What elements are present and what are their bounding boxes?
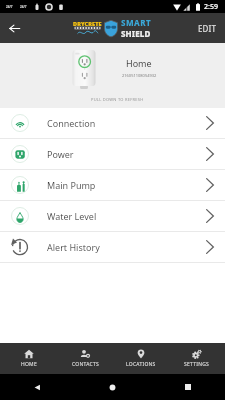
button[interactable]: EDIT	[192, 17, 225, 39]
button[interactable]: Recents	[150, 374, 225, 400]
staticText: LOCATIONS	[126, 361, 156, 368]
staticText: SETTINGS	[184, 361, 210, 368]
staticText: DRYCRETE	[73, 20, 102, 27]
staticText: PULL DOWN TO REFRESH	[91, 97, 144, 102]
staticText: Power	[47, 148, 74, 160]
staticText: 216051108054932	[122, 73, 157, 78]
staticText: Connection	[47, 117, 96, 129]
staticText: CONTACTS	[72, 361, 99, 368]
button[interactable]: HOME	[0, 343, 57, 374]
staticText: Home	[126, 57, 152, 69]
staticText: EDIT	[198, 23, 217, 34]
staticText: Alert History	[47, 241, 100, 253]
button[interactable]: Alert History	[0, 232, 225, 262]
staticText: Main Pump	[47, 179, 96, 191]
button[interactable]: Main Pump	[0, 170, 225, 200]
button[interactable]: Connection	[0, 108, 225, 138]
button[interactable]: Back	[3, 17, 25, 39]
button[interactable]: Home	[75, 374, 150, 400]
staticText: 24/7	[20, 5, 27, 9]
staticText: HOME	[21, 361, 37, 368]
staticText: SMART	[121, 17, 152, 28]
button[interactable]: Water Level	[0, 201, 225, 231]
button[interactable]: Back	[0, 374, 75, 400]
staticText: 2:59	[204, 2, 218, 12]
staticText: Water Level	[47, 210, 97, 222]
button[interactable]: Power	[0, 139, 225, 169]
button[interactable]: LOCATIONS	[113, 343, 169, 374]
button[interactable]: SETTINGS	[169, 343, 225, 374]
button[interactable]: CONTACTS	[57, 343, 113, 374]
staticText: 24/7	[6, 5, 13, 9]
staticText: SHIELD	[121, 28, 151, 39]
